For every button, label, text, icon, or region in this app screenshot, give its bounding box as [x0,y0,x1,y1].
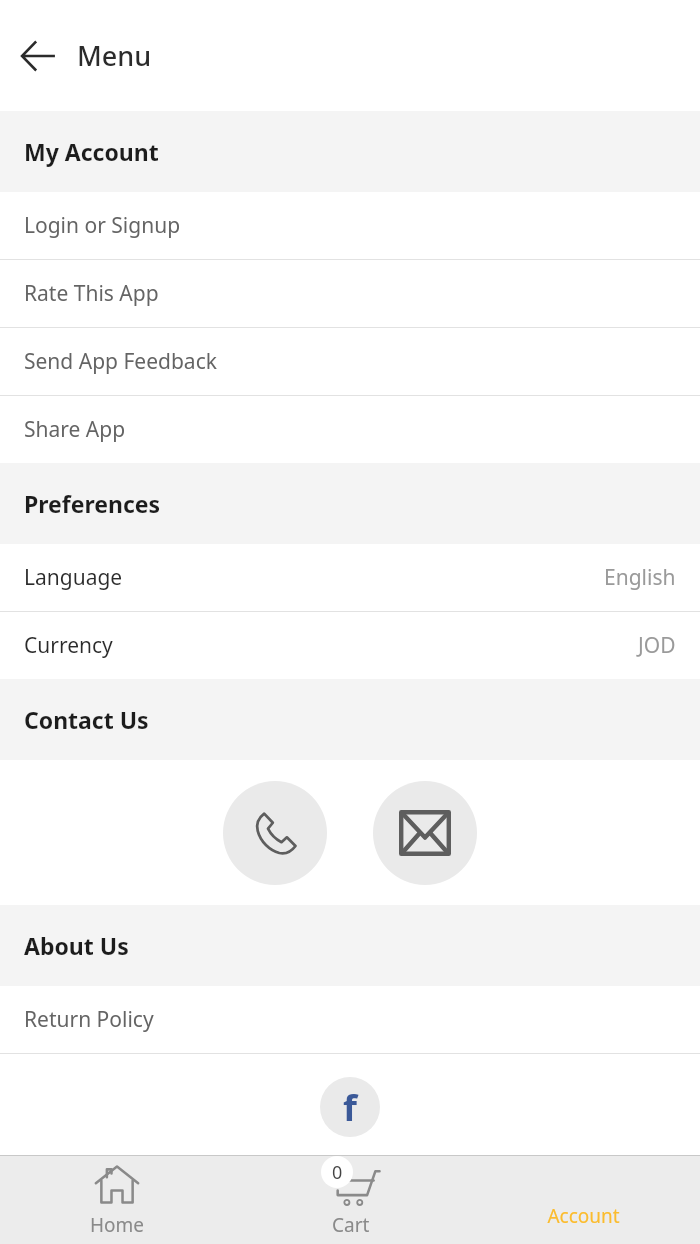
button[interactable]: Return Policy [0,986,700,1053]
button[interactable]: Call us [223,781,327,885]
staticText: Send App Feedback [24,347,217,376]
button[interactable]: Home [0,1156,234,1244]
button[interactable]: Facebook [320,1077,380,1137]
button[interactable]: Login or Signup [0,192,700,259]
staticText: Language [24,563,123,592]
staticText: 0 [332,1160,343,1185]
button[interactable]: Send App Feedback [0,328,700,395]
staticText: Preferences [24,488,161,519]
button[interactable]: Email us [373,781,477,885]
staticText: Cart [332,1212,370,1238]
staticText: Rate This App [24,279,159,308]
staticText: Share App [24,415,126,444]
button[interactable]: Language [0,544,700,611]
staticText: Menu [77,37,152,74]
staticText: JOD [638,631,676,660]
button[interactable]: Currency [0,612,700,679]
staticText: Account [547,1203,620,1229]
button[interactable]: Back [10,28,66,84]
staticText: My Account [24,136,159,167]
button[interactable]: Share App [0,396,700,463]
staticText: Home [90,1212,145,1238]
staticText: Contact Us [24,704,149,735]
staticText: Return Policy [24,1005,154,1034]
button[interactable]: 0 [234,1156,467,1244]
button[interactable]: Rate This App [0,260,700,327]
staticText: Currency [24,631,113,660]
staticText: English [604,563,676,592]
staticText: f [343,1083,357,1132]
button[interactable]: Account [467,1156,700,1244]
staticText: Login or Signup [24,211,181,240]
staticText: About Us [24,930,129,961]
